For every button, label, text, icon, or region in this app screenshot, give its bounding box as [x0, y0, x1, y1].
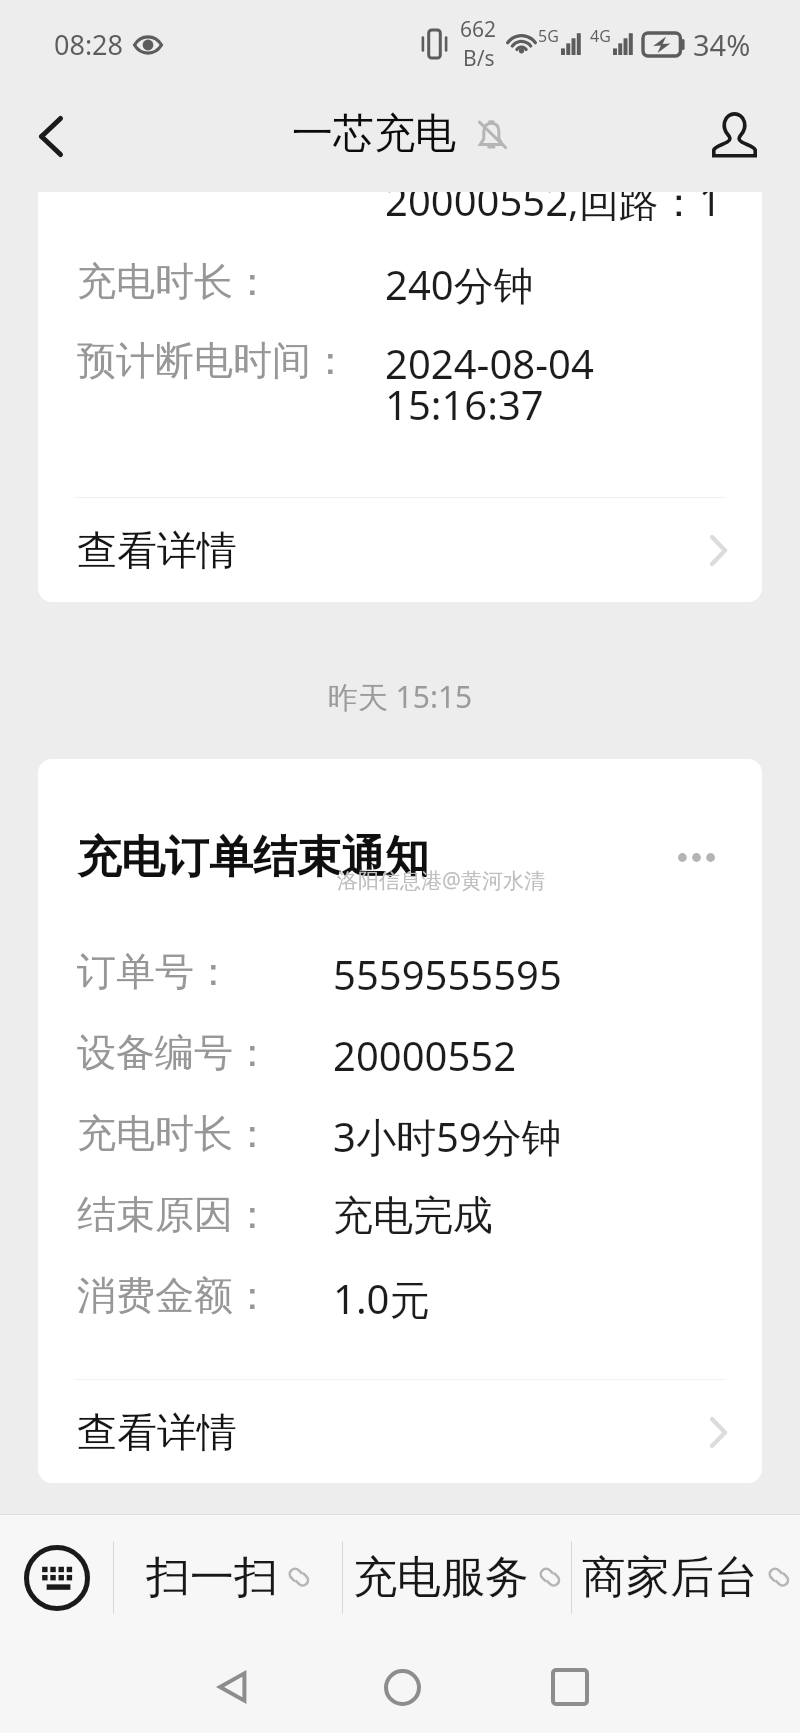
- staticText: 充电时长：: [77, 257, 272, 306]
- staticText: 34%: [693, 25, 751, 64]
- button[interactable]: Back: [14, 102, 88, 170]
- staticText: 预计断电时间：: [77, 336, 350, 385]
- button[interactable]: 扫一扫: [113, 1515, 342, 1640]
- button[interactable]: Profile: [697, 100, 771, 170]
- staticText: 查看详情: [77, 525, 237, 575]
- button[interactable]: 查看详情: [38, 498, 762, 602]
- staticText: 一芯充电: [292, 108, 456, 160]
- staticText: 20000552,回路：1: [385, 192, 722, 228]
- staticText: 2024-08-04 15:16:37: [385, 336, 594, 432]
- staticText: 20000552: [333, 1028, 517, 1082]
- staticText: 充电完成: [333, 1190, 493, 1240]
- staticText: 08:28: [54, 26, 124, 63]
- staticText: 充电订单结束通知: [77, 830, 429, 885]
- staticText: 充电时长：: [77, 1109, 272, 1158]
- button[interactable]: More options: [668, 829, 724, 885]
- staticText: 订单号：: [77, 947, 233, 996]
- button[interactable]: 查看详情: [38, 1380, 762, 1483]
- staticText: 结束原因：: [77, 1190, 272, 1239]
- staticText: 消费金额：: [77, 1271, 272, 1320]
- staticText: 1.0元: [333, 1271, 430, 1326]
- staticText: 240分钟: [385, 257, 534, 312]
- staticText: 昨天 15:15: [0, 676, 800, 717]
- staticText: 设备编号：: [77, 1028, 272, 1077]
- button[interactable]: 商家后台: [571, 1515, 800, 1640]
- staticText: 商家后台: [582, 1550, 758, 1605]
- button[interactable]: 充电服务: [342, 1515, 571, 1640]
- staticText: 洛阳信息港@黄河水清: [337, 866, 545, 895]
- staticText: 查看详情: [77, 1407, 237, 1457]
- staticText: 充电服务: [353, 1550, 529, 1605]
- button[interactable]: 20000552,回路：1: [38, 192, 762, 602]
- button[interactable]: Keyboard: [0, 1515, 113, 1640]
- staticText: 5G: [538, 25, 559, 47]
- staticText: 5559555595: [333, 947, 562, 1001]
- staticText: 4G: [590, 25, 611, 47]
- staticText: B/s: [463, 44, 495, 73]
- staticText: 662: [460, 15, 497, 44]
- staticText: 3小时59分钟: [333, 1109, 562, 1164]
- staticText: 扫一扫: [146, 1550, 278, 1605]
